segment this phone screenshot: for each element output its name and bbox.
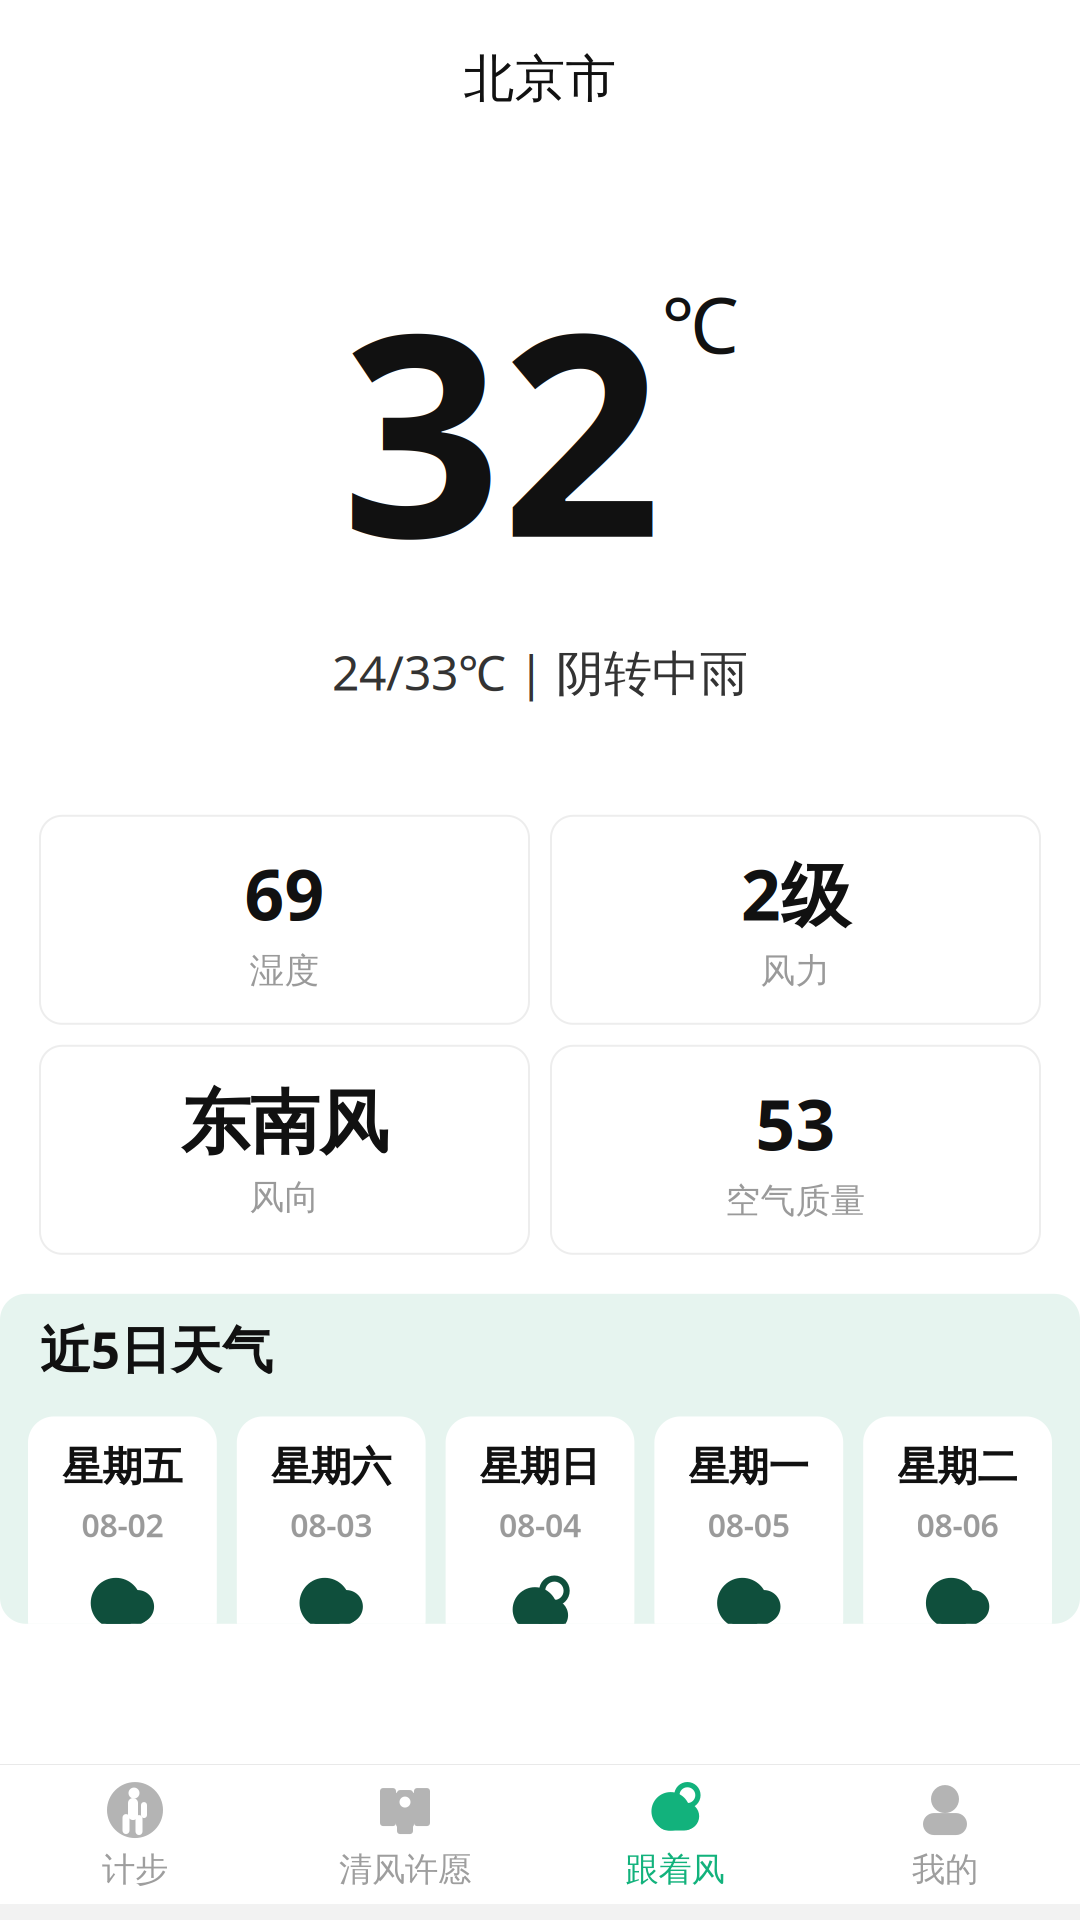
button[interactable]: 星期六 [237, 1416, 426, 1646]
staticText: 星期五 [62, 1442, 182, 1491]
button[interactable]: 53 [551, 1046, 1040, 1254]
button[interactable]: 清风许愿 [270, 1765, 540, 1904]
button[interactable]: 星期日 [446, 1416, 634, 1646]
staticText: 星期六 [271, 1442, 391, 1491]
button[interactable]: 跟着风 [540, 1765, 810, 1904]
button[interactable]: 69 [40, 816, 529, 1024]
staticText: 69 [244, 847, 324, 940]
staticText: 32 [341, 242, 661, 614]
staticText: 08-05 [708, 1504, 790, 1546]
staticText: 24/33℃ | 阴转中雨 [332, 640, 748, 704]
staticText: 08-06 [917, 1504, 999, 1546]
staticText: 53 [755, 1077, 835, 1170]
staticText: 北京市 [463, 48, 616, 110]
staticText: 星期日 [480, 1442, 600, 1491]
button[interactable]: 我的 [810, 1765, 1080, 1904]
staticText: 计步 [102, 1849, 168, 1890]
staticText: 风力 [760, 949, 830, 992]
staticText: 跟着风 [625, 1849, 724, 1890]
staticText: 星期一 [689, 1442, 809, 1491]
staticText: 清风许愿 [339, 1849, 471, 1890]
staticText: 风向 [249, 1176, 319, 1219]
staticText: ℃ [661, 272, 738, 375]
button[interactable]: 星期一 [654, 1416, 843, 1646]
staticText: 我的 [912, 1849, 978, 1890]
button[interactable]: 2级 [551, 816, 1040, 1024]
staticText: 2级 [741, 847, 850, 940]
staticText: 星期二 [898, 1442, 1018, 1491]
staticText: 08-03 [290, 1504, 372, 1546]
button[interactable]: 计步 [0, 1765, 270, 1904]
button[interactable]: 东南风 [40, 1046, 529, 1254]
staticText: 08-02 [81, 1504, 163, 1546]
staticText: 东南风 [181, 1081, 388, 1166]
staticText: 湿度 [249, 949, 319, 992]
staticText: 08-04 [499, 1504, 581, 1546]
button[interactable]: 星期二 [863, 1416, 1052, 1646]
staticText: 近5日天气 [40, 1315, 273, 1382]
staticText: 空气质量 [725, 1179, 865, 1222]
button[interactable]: 星期五 [28, 1416, 217, 1646]
